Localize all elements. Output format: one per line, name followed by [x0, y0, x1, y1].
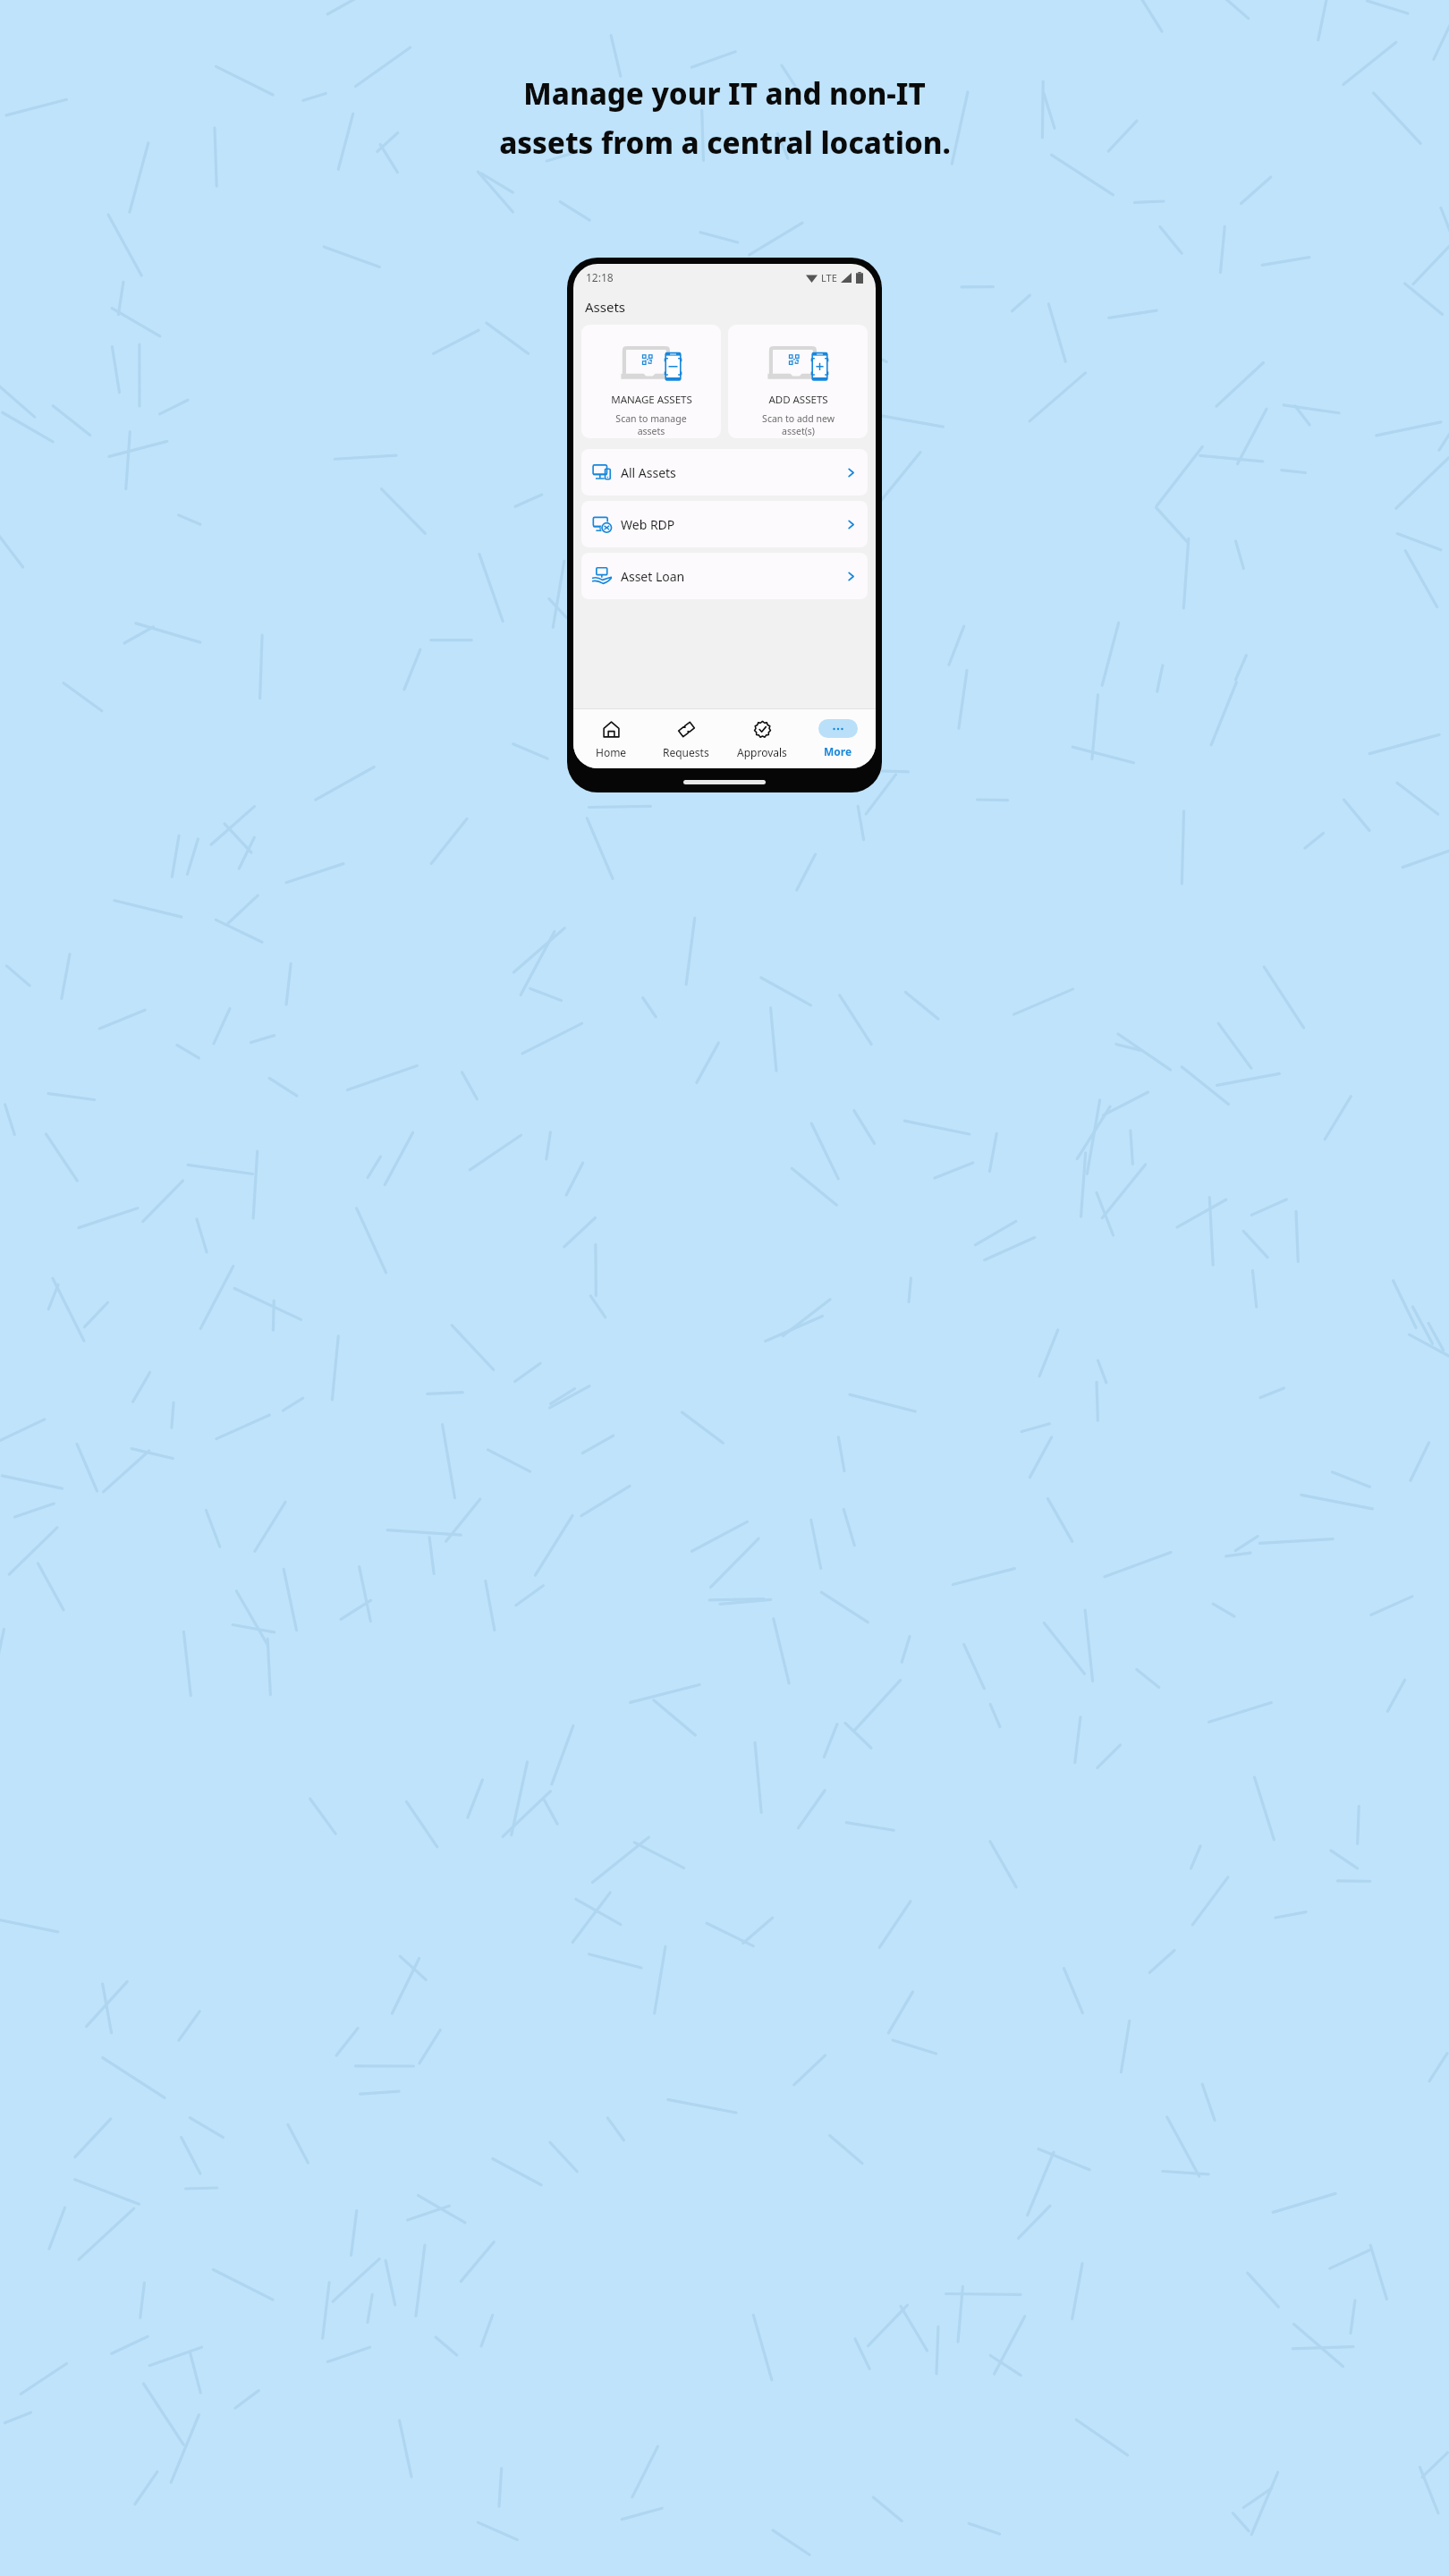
- button[interactable]: Requests: [648, 709, 724, 768]
- staticText: Approvals: [737, 745, 787, 759]
- staticText: More: [824, 744, 852, 758]
- staticText: Assets: [585, 298, 626, 316]
- staticText: ADD ASSETS: [768, 393, 828, 407]
- button[interactable]: Home: [573, 709, 648, 768]
- button[interactable]: Web RDP: [581, 501, 868, 547]
- staticText: LTE: [821, 271, 837, 284]
- button[interactable]: Approvals: [724, 709, 800, 768]
- staticText: Home: [596, 745, 627, 759]
- button[interactable]: ADD ASSETS: [728, 325, 868, 438]
- staticText: MANAGE ASSETS: [611, 393, 692, 407]
- staticText: Scan to manage assets: [615, 412, 687, 437]
- button[interactable]: All Assets: [581, 449, 868, 496]
- staticText: Scan to add new asset(s): [762, 412, 835, 437]
- staticText: Web RDP: [621, 516, 675, 533]
- button[interactable]: MANAGE ASSETS: [581, 325, 721, 438]
- button[interactable]: More: [800, 709, 876, 768]
- staticText: All Assets: [621, 464, 676, 481]
- staticText: assets from a central location.: [499, 123, 951, 163]
- staticText: Requests: [663, 745, 709, 759]
- staticText: Asset Loan: [621, 568, 685, 585]
- staticText: 12:18: [586, 270, 614, 284]
- button[interactable]: Asset Loan: [581, 553, 868, 599]
- staticText: Manage your IT and non-IT: [523, 73, 926, 114]
